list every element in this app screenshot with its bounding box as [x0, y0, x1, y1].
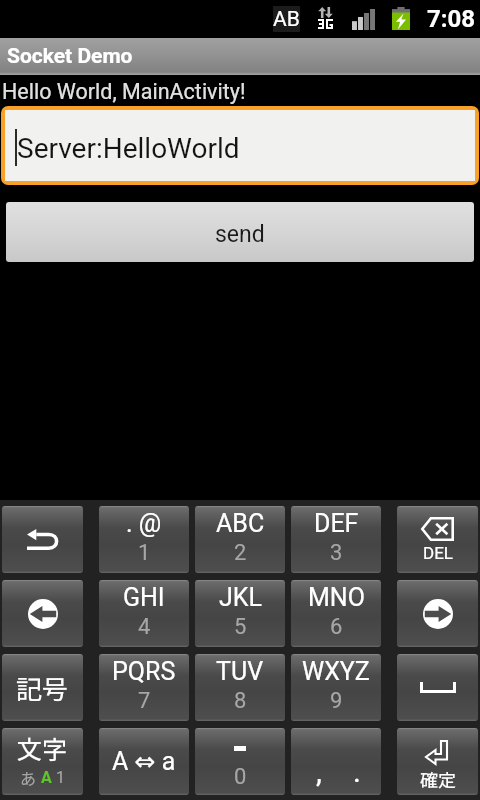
button[interactable]: Server:HelloWorld	[5, 110, 475, 181]
staticText: JKL	[219, 583, 262, 612]
staticText: Server:HelloWorld	[17, 132, 240, 165]
staticText: 記号	[16, 669, 69, 707]
button[interactable]: TUV	[195, 654, 285, 721]
staticText: A	[41, 768, 52, 787]
staticText: Hello World, MainActivity!	[2, 79, 246, 104]
button[interactable]: 確定	[397, 728, 478, 795]
staticText: DEL	[423, 543, 453, 563]
button[interactable]: DEF	[291, 506, 381, 573]
staticText: 8	[234, 688, 247, 714]
staticText: 2	[234, 540, 247, 566]
button[interactable]: ,	[291, 728, 381, 795]
staticText: ABC	[216, 509, 265, 538]
staticText: 3	[330, 540, 343, 566]
button[interactable]: . @	[99, 506, 189, 573]
staticText: .	[353, 754, 361, 789]
staticText: MNO	[308, 583, 365, 612]
staticText: WXYZ	[302, 657, 370, 686]
staticText: ,	[316, 754, 322, 789]
button[interactable]: A ⇔ a	[99, 728, 189, 795]
staticText: 文字	[17, 730, 68, 766]
staticText: send	[215, 221, 265, 248]
button[interactable]: Back	[2, 506, 83, 573]
staticText: 9	[330, 688, 343, 714]
staticText: TUV	[216, 657, 264, 686]
button[interactable]: send	[6, 202, 474, 262]
button[interactable]: 記号	[2, 654, 83, 721]
button[interactable]: GHI	[99, 580, 189, 647]
staticText: A ⇔ a	[112, 747, 176, 776]
button[interactable]: Space	[397, 654, 478, 721]
staticText: 1	[56, 768, 65, 787]
staticText: 7:08	[427, 5, 476, 33]
button[interactable]: Move cursor right	[397, 580, 478, 647]
button[interactable]: WXYZ	[291, 654, 381, 721]
staticText: PQRS	[112, 657, 176, 686]
button[interactable]: Move cursor left	[2, 580, 83, 647]
button[interactable]: 0	[195, 728, 285, 795]
staticText: 1	[138, 540, 151, 566]
button[interactable]: JKL	[195, 580, 285, 647]
staticText: 7	[138, 688, 151, 714]
button[interactable]: MNO	[291, 580, 381, 647]
staticText: 4	[138, 614, 151, 640]
staticText: GHI	[123, 583, 165, 612]
staticText: DEF	[314, 509, 359, 538]
staticText: AB	[273, 7, 300, 32]
button[interactable]: PQRS	[99, 654, 189, 721]
staticText: . @	[126, 509, 162, 538]
button[interactable]: ABC	[195, 506, 285, 573]
staticText: 0	[234, 764, 247, 790]
button[interactable]: DEL	[397, 506, 478, 573]
staticText: 5	[234, 614, 247, 640]
staticText: Socket Demo	[7, 44, 133, 69]
button[interactable]: 文字	[2, 728, 83, 795]
staticText: 確定	[420, 766, 456, 792]
staticText: あ	[20, 766, 37, 789]
staticText: 6	[330, 614, 343, 640]
